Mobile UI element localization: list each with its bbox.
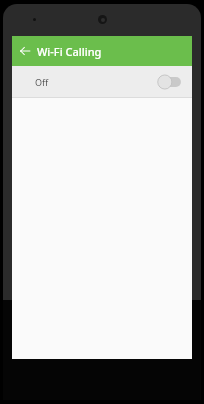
other: Wi-Fi Calling toggle, off xyxy=(157,74,183,90)
staticText: Wi-Fi Calling xyxy=(37,44,102,59)
staticText: Off xyxy=(35,76,49,88)
button[interactable]: Off xyxy=(12,66,192,97)
button[interactable]: Navigate up xyxy=(12,36,37,66)
